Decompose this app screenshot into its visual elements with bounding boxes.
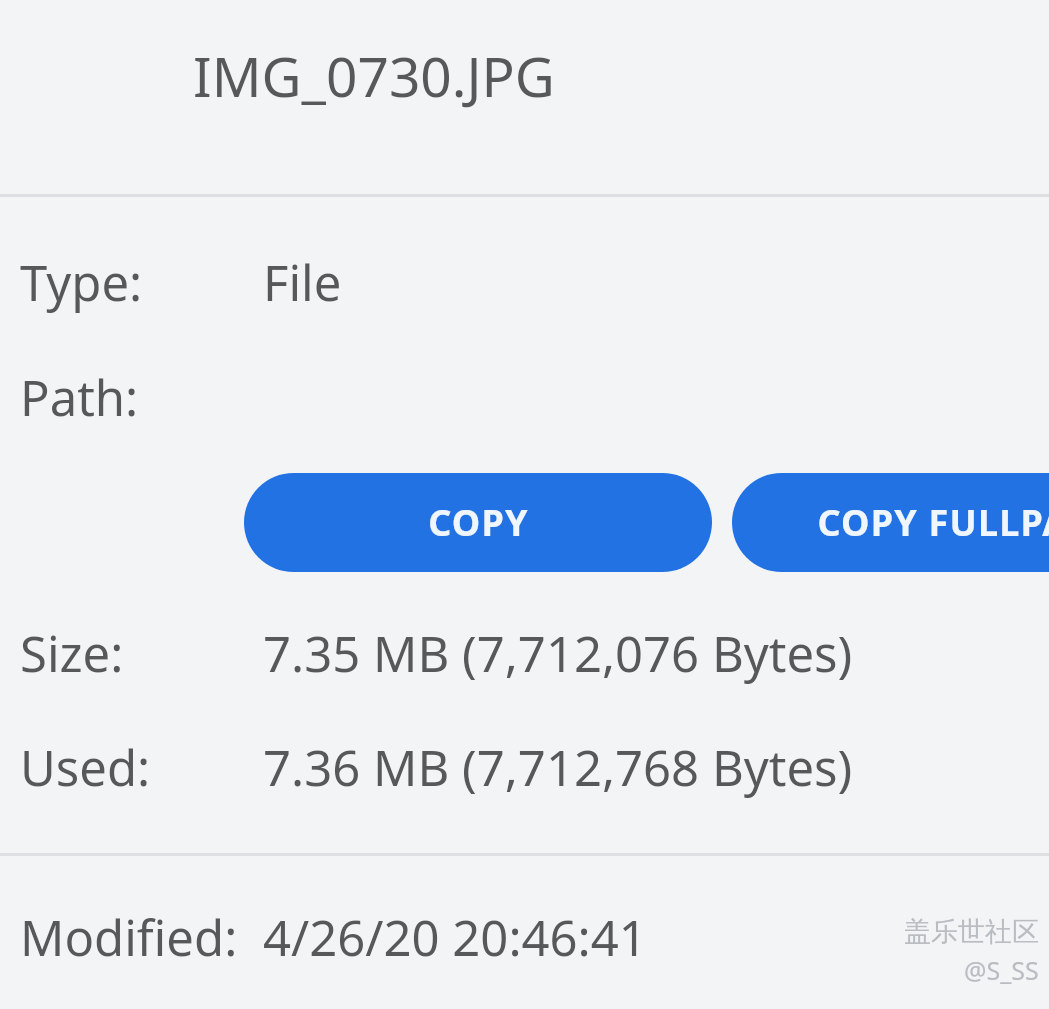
- staticText: Modified:: [20, 904, 238, 971]
- staticText: 7.35 MB (7,712,076 Bytes): [263, 620, 853, 687]
- button[interactable]: COPY: [244, 473, 712, 572]
- button[interactable]: COPY FULLPATH: [732, 473, 1049, 572]
- staticText: IMG_0730.JPG: [193, 38, 555, 113]
- staticText: Size:: [20, 620, 124, 687]
- staticText: COPY FULLPATH: [817, 498, 1049, 547]
- staticText: Path:: [20, 364, 139, 431]
- staticText: @S_SS: [964, 953, 1039, 987]
- staticText: 4/26/20 20:46:41: [263, 904, 647, 971]
- staticText: COPY: [428, 498, 529, 547]
- staticText: 盖乐世社区: [904, 915, 1039, 949]
- staticText: Used:: [20, 734, 151, 801]
- staticText: Type:: [20, 249, 143, 316]
- staticText: File: [263, 249, 342, 316]
- staticText: 7.36 MB (7,712,768 Bytes): [263, 734, 853, 801]
